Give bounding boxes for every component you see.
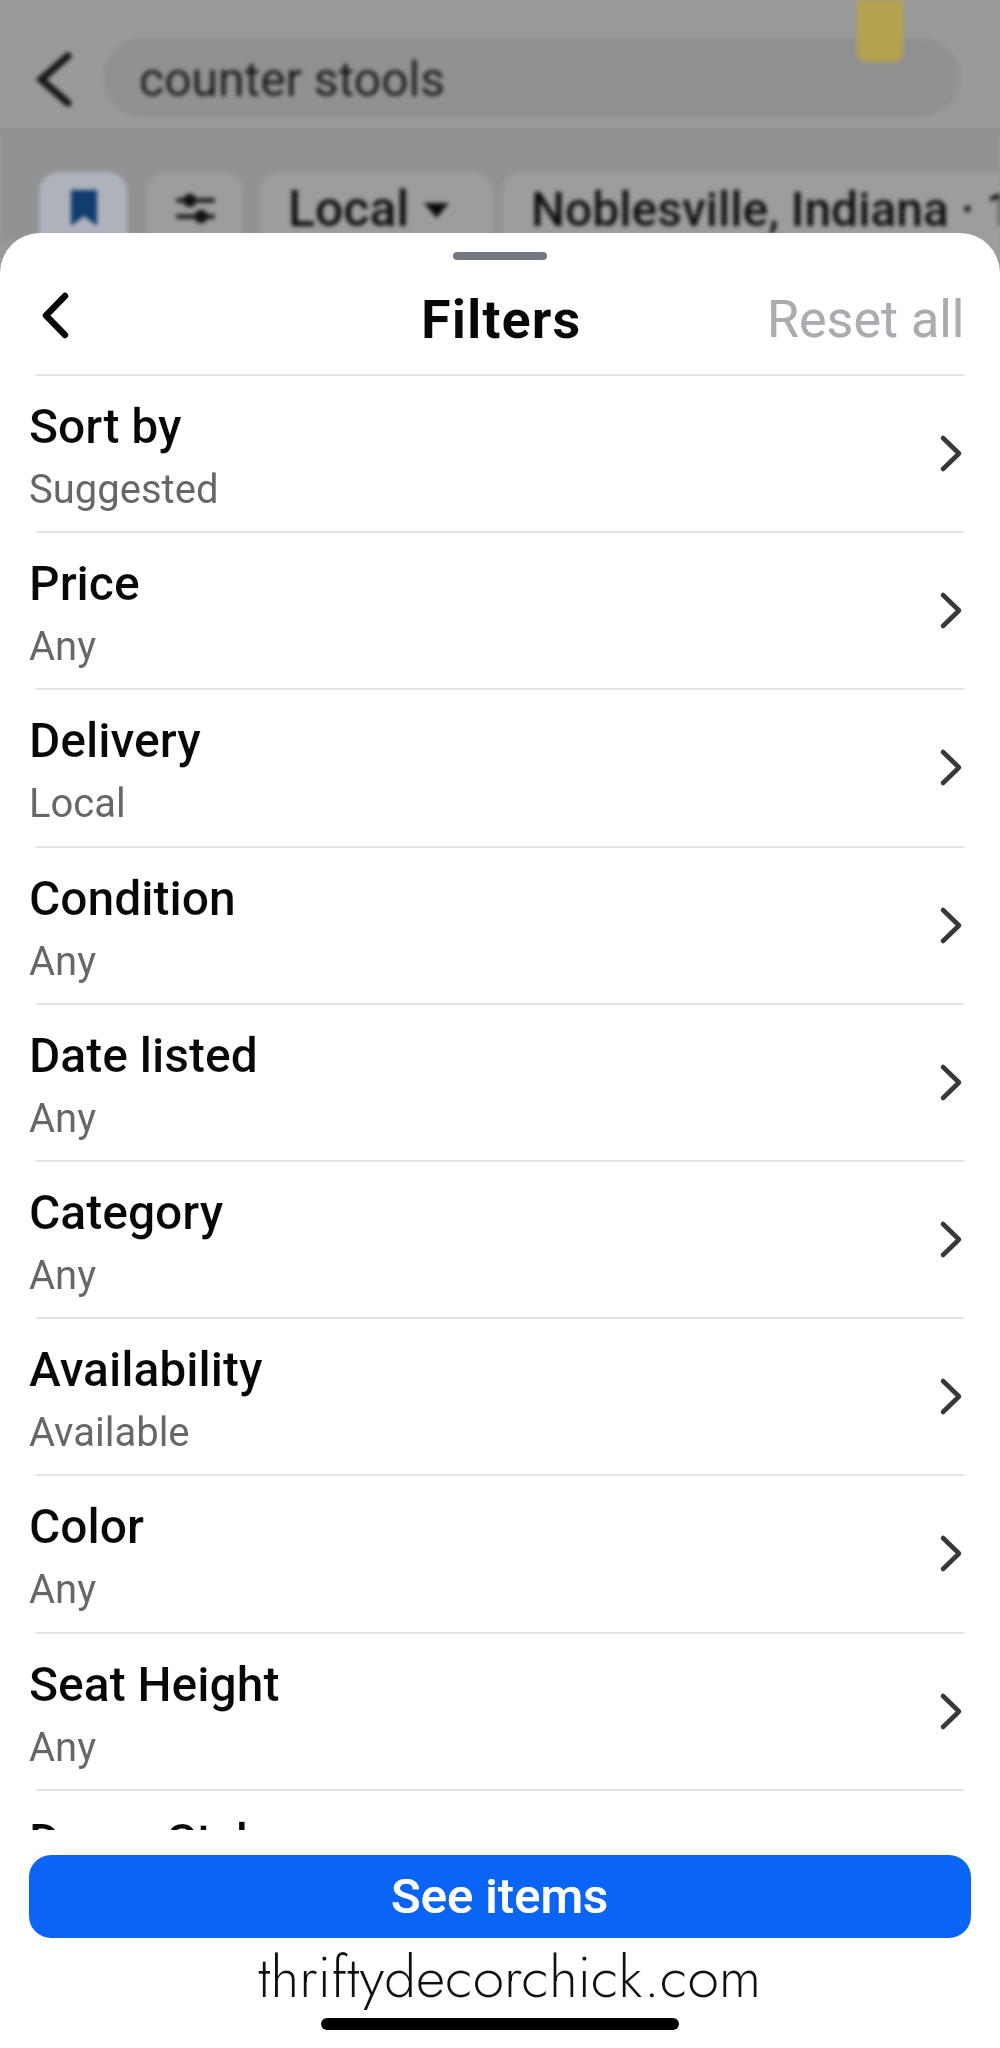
button[interactable]: Date listed [0, 1003, 1000, 1160]
button[interactable]: Filters [146, 172, 243, 256]
staticText: Any [29, 1724, 97, 1771]
staticText: Sort by [29, 398, 182, 454]
staticText: counter stools [139, 51, 445, 107]
staticText: Available [29, 1409, 190, 1456]
staticText: Any [29, 938, 97, 985]
button[interactable]: Saved [39, 172, 127, 256]
staticText: Decor Style [29, 1813, 274, 1869]
button[interactable]: Sort by [0, 374, 1000, 531]
staticText: Date listed [29, 1027, 258, 1083]
button[interactable]: Delivery [0, 688, 1000, 845]
button[interactable]: Condition [0, 846, 1000, 1003]
button[interactable]: Back [18, 263, 90, 341]
staticText: Color [29, 1498, 145, 1554]
staticText: Price [29, 555, 140, 611]
button[interactable]: Price [0, 531, 1000, 688]
staticText: See items [391, 1868, 609, 1925]
button[interactable]: Availability [0, 1317, 1000, 1474]
staticText: Any [29, 1881, 97, 1928]
button[interactable]: Color [0, 1474, 1000, 1631]
button[interactable]: Reset all [748, 283, 980, 355]
button[interactable]: Back [14, 40, 94, 120]
staticText: Availability [29, 1341, 263, 1397]
staticText: Noblesville, Indiana · 1 [531, 181, 1000, 237]
staticText: Condition [29, 870, 236, 926]
staticText: Filters [421, 288, 582, 351]
button[interactable]: Category [0, 1160, 1000, 1317]
staticText: Any [29, 623, 97, 670]
staticText: Suggested [29, 466, 219, 513]
staticText: Any [29, 1095, 97, 1142]
button[interactable]: Local [260, 172, 493, 256]
button[interactable]: Seat Height [0, 1632, 1000, 1789]
button[interactable]: Decor Style [0, 1789, 1000, 1946]
staticText: thriftydecorchick.com [258, 1936, 762, 2018]
staticText: Local [288, 180, 410, 239]
staticText: Delivery [29, 712, 201, 768]
staticText: Category [29, 1184, 224, 1240]
button[interactable]: See items [29, 1855, 971, 1938]
staticText: Any [29, 1252, 97, 1299]
staticText: Seat Height [29, 1656, 280, 1712]
staticText: Reset all [767, 289, 965, 350]
button[interactable]: Noblesville, Indiana · 1 [502, 172, 1000, 256]
staticText: Local [29, 780, 126, 827]
staticText: Any [29, 1566, 97, 1613]
